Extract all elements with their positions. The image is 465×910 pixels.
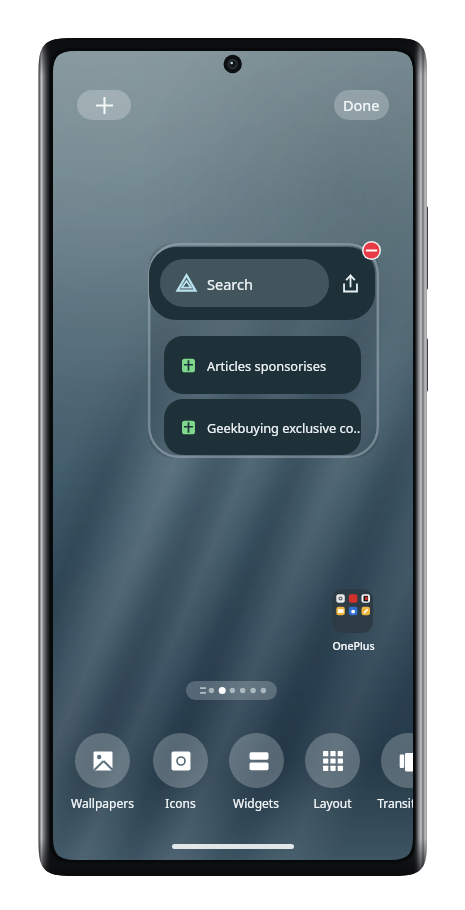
button[interactable]: Widgets: [218, 733, 294, 811]
button[interactable]: Remove widget: [362, 241, 381, 260]
button[interactable]: Layout: [294, 733, 370, 811]
button[interactable]: Search: [149, 247, 375, 320]
staticText: Wallpapers: [71, 795, 134, 811]
staticText: Done: [343, 95, 380, 115]
button[interactable]: Page indicator: [186, 681, 277, 700]
button[interactable]: Articles sponsorises: [164, 336, 361, 394]
button[interactable]: Wallpapers: [64, 733, 140, 811]
button[interactable]: Add widget: [77, 90, 131, 120]
button[interactable]: Icons: [142, 733, 218, 811]
staticText: Articles sponsorises: [207, 357, 327, 374]
staticText: Icons: [165, 795, 196, 811]
staticText: Transitions: [377, 795, 413, 811]
button[interactable]: Share: [335, 268, 365, 298]
button[interactable]: OnePlus folder: [332, 589, 373, 633]
button[interactable]: Done: [334, 90, 389, 120]
staticText: OnePlus: [332, 639, 375, 653]
staticText: Widgets: [233, 795, 279, 811]
button[interactable]: Geekbuying exclusive co…: [164, 399, 361, 455]
button[interactable]: Transitions: [370, 733, 413, 811]
staticText: Layout: [313, 795, 352, 811]
staticText: Geekbuying exclusive co…: [207, 419, 361, 436]
staticText: Search: [207, 274, 253, 294]
